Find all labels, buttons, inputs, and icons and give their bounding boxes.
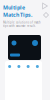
staticText: Multiple solutions of match: [3, 21, 41, 24]
staticText: tips with accurate result.: [3, 24, 36, 28]
staticText: Match Tips.: [3, 11, 32, 18]
staticText: Multiple: [3, 4, 25, 11]
